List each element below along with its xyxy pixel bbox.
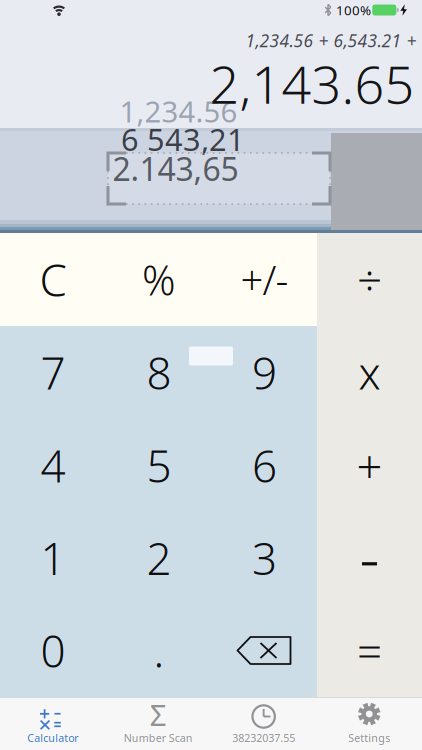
button[interactable]: 2 [106, 512, 212, 604]
button[interactable]: ÷ [317, 233, 422, 326]
button[interactable]: + [317, 419, 422, 512]
staticText: 2.143,65 [112, 147, 238, 190]
staticText: % [142, 251, 176, 308]
button[interactable]: 5 [106, 419, 212, 512]
staticText: ÷ [357, 249, 382, 309]
staticText: = [357, 620, 382, 680]
staticText: 0 [40, 620, 65, 680]
button[interactable]: 0 [0, 604, 106, 697]
button[interactable]: 3 [212, 512, 317, 604]
button[interactable]: Σ [105, 698, 211, 750]
button[interactable]: = [317, 604, 422, 697]
staticText: 1,234.56 [119, 91, 237, 130]
button[interactable]: +/- [212, 233, 317, 326]
button[interactable]: Calculator [0, 698, 105, 750]
staticText: 38232037.55 [232, 731, 295, 745]
staticText: 6 543,21 [121, 119, 245, 159]
staticText: Settings [348, 731, 390, 745]
staticText: . [153, 620, 164, 680]
button[interactable]: 6 [212, 419, 317, 512]
staticText: 7 [40, 342, 65, 402]
staticText: 8 [146, 342, 171, 402]
staticText: 4 [40, 435, 65, 495]
button[interactable]: C [0, 233, 106, 326]
button[interactable]: 8 [106, 326, 212, 419]
button[interactable]: % [106, 233, 212, 326]
staticText: Σ [150, 695, 167, 734]
staticText: 9 [252, 342, 277, 402]
button[interactable]: Delete [212, 604, 317, 697]
button[interactable]: 38232037.55 [211, 698, 316, 750]
staticText: 1,234.56 + 6,543.21 + [245, 29, 416, 52]
staticText: 2,143.65 [209, 48, 414, 119]
staticText: +/- [240, 252, 288, 307]
button[interactable]: Settings [316, 698, 422, 750]
staticText: 2 [146, 528, 171, 588]
staticText: x [358, 342, 380, 402]
staticText: 1 [40, 528, 65, 588]
button[interactable]: 9 [212, 326, 317, 419]
button[interactable]: 7 [0, 326, 106, 419]
staticText: 3 [252, 528, 277, 588]
button[interactable]: 1 [0, 512, 106, 604]
staticText: 6 [252, 435, 277, 495]
staticText: + [356, 435, 382, 496]
staticText: Number Scan [124, 731, 193, 745]
button[interactable]: 4 [0, 419, 106, 512]
button[interactable]: . [106, 604, 212, 697]
button[interactable]: x [317, 326, 422, 419]
staticText: 100% [336, 1, 371, 19]
staticText: C [39, 249, 66, 309]
staticText: 5 [146, 435, 171, 495]
staticText: Calculator [27, 731, 78, 745]
button[interactable]: Subtract [317, 512, 422, 604]
